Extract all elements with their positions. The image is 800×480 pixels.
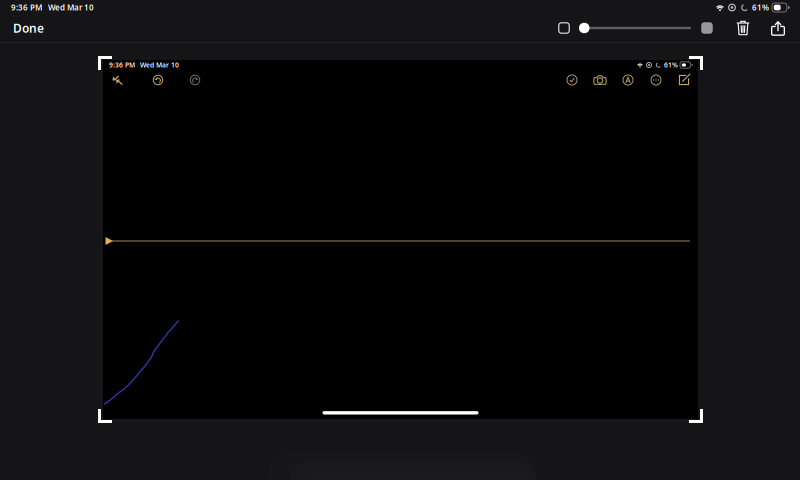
button[interactable]: Annotate [615,70,641,90]
staticText: 61% [752,2,769,13]
button[interactable]: Thick stroke [695,15,719,41]
staticText: Done [13,20,44,36]
staticText: Wed Mar 10 [140,61,179,69]
button[interactable]: Camera [587,70,613,90]
button[interactable]: Share [763,15,793,41]
staticText: Wed Mar 10 [48,2,94,13]
button[interactable]: Delete [728,15,758,41]
button[interactable]: Done markup [559,70,585,90]
staticText: 9:36 PM [11,2,42,13]
button[interactable]: More [643,70,669,90]
button[interactable]: Redo [184,70,206,90]
button[interactable]: Collapse [105,70,129,90]
staticText: 61% [664,61,678,69]
button[interactable]: Done [0,15,57,41]
button[interactable]: Markup [671,70,697,90]
button[interactable]: Thin stroke [553,15,575,41]
staticText: 9:36 PM [109,61,135,69]
button[interactable]: Undo [147,70,169,90]
